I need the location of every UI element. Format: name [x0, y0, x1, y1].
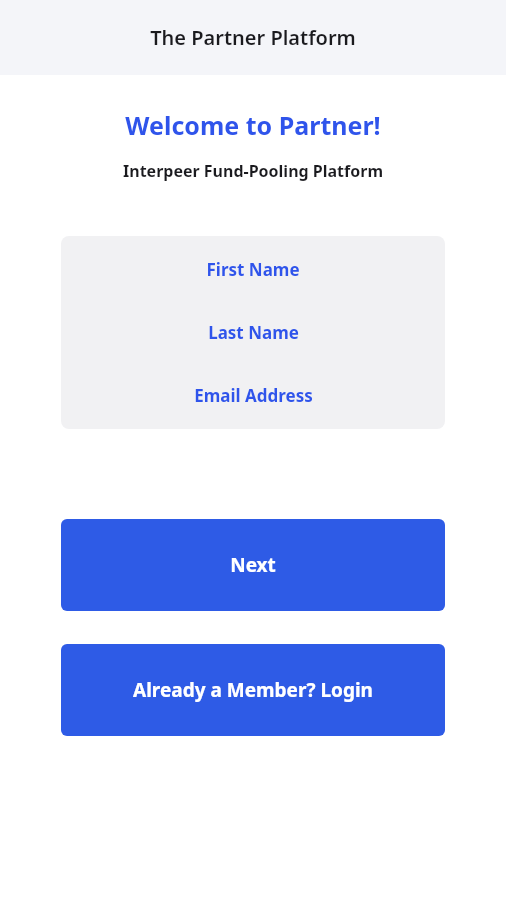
staticText: Email Address	[194, 384, 313, 407]
staticText: Interpeer Fund-Pooling Platform	[123, 160, 383, 182]
button[interactable]: Already a Member? Login	[61, 644, 445, 736]
staticText: First Name	[206, 258, 300, 281]
staticText: Next	[230, 552, 276, 578]
button[interactable]: First Name	[61, 256, 445, 283]
staticText: Last Name	[208, 321, 299, 344]
staticText: Already a Member? Login	[133, 677, 373, 703]
button[interactable]: Last Name	[61, 319, 445, 346]
staticText: The Partner Platform	[150, 24, 356, 51]
staticText: Welcome to Partner!	[125, 108, 381, 142]
button[interactable]: Email Address	[61, 382, 445, 409]
button[interactable]: Next	[61, 519, 445, 611]
